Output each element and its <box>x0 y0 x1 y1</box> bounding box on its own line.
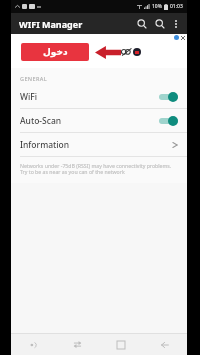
button[interactable]: Search networks <box>133 15 151 33</box>
button[interactable]: Search <box>151 15 169 33</box>
staticText: GENERAL <box>20 75 48 82</box>
button[interactable]: Information <box>11 133 187 156</box>
button[interactable]: Switch apps <box>55 334 99 355</box>
staticText: Auto-Scan <box>20 115 62 127</box>
button[interactable]: دخول <box>21 43 89 61</box>
staticText: Networks under -75dB (RSSI) may have con… <box>20 162 173 176</box>
staticText: WIFI Manager <box>19 18 83 30</box>
staticText: WiFi <box>20 91 38 103</box>
staticText: 01:03 <box>170 3 183 10</box>
button[interactable]: Close ad <box>180 35 185 40</box>
button[interactable]: WiFi <box>11 85 187 108</box>
button[interactable]: Recent apps <box>99 334 143 355</box>
staticText: 10% <box>152 3 162 10</box>
button[interactable]: More options <box>169 17 183 31</box>
button[interactable]: Back <box>143 334 187 355</box>
button[interactable]: Auto-Scan <box>11 109 187 132</box>
button[interactable]: Assistant <box>11 334 55 355</box>
staticText: دخول <box>43 47 68 57</box>
staticText: Information <box>20 139 70 151</box>
